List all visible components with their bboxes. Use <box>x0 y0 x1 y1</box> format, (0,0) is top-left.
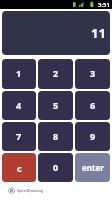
staticText: 0 <box>53 161 59 173</box>
staticText: 6 <box>90 99 96 111</box>
button[interactable]: 1 <box>2 59 36 89</box>
button[interactable]: SpeedQuizzing logo <box>8 187 44 194</box>
button[interactable]: 3 <box>75 59 110 89</box>
other: SpeedQuizzing logo <box>8 187 15 194</box>
staticText: 1 <box>16 67 22 79</box>
staticText: 11 <box>91 24 106 42</box>
button[interactable]: 0 <box>38 153 73 182</box>
staticText: SpeedQuizzing <box>17 188 44 193</box>
staticText: 3 <box>90 67 96 79</box>
button[interactable]: 4 <box>2 91 36 120</box>
staticText: 8 <box>53 130 59 142</box>
staticText: 7 <box>16 130 22 142</box>
staticText: c <box>17 162 22 174</box>
button[interactable]: 8 <box>38 122 73 151</box>
staticText: 4 <box>16 99 22 111</box>
button[interactable]: 11 <box>2 11 110 55</box>
button[interactable]: 7 <box>2 122 36 151</box>
staticText: enter <box>82 162 104 173</box>
staticText: 2 <box>53 67 59 79</box>
staticText: 3:51 <box>98 1 110 9</box>
button[interactable]: 6 <box>75 91 110 120</box>
button[interactable]: enter <box>75 153 110 182</box>
button[interactable]: 9 <box>75 122 110 151</box>
button[interactable]: c <box>2 153 36 182</box>
staticText: 5 <box>53 99 59 111</box>
staticText: 9 <box>90 130 96 142</box>
button[interactable]: 2 <box>38 59 73 89</box>
button[interactable]: 5 <box>38 91 73 120</box>
